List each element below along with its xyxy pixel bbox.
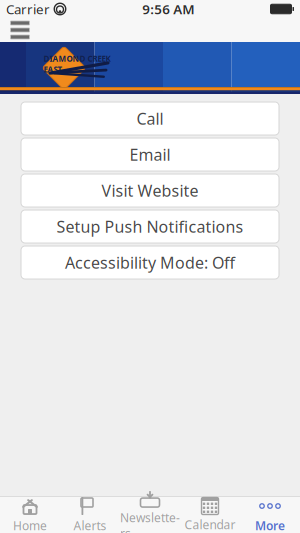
button[interactable]: Menu: [3, 18, 37, 42]
staticText: More: [255, 517, 285, 533]
button[interactable]: Visit Website: [21, 174, 279, 207]
staticText: DIAMOND CREEK EAST: [43, 53, 110, 75]
button[interactable]: Alerts: [60, 497, 120, 533]
button[interactable]: Setup Push Notifications: [21, 210, 279, 243]
button[interactable]: Email: [21, 138, 279, 171]
staticText: Visit Website: [101, 180, 198, 201]
button[interactable]: More: [240, 497, 300, 533]
staticText: Accessibility Mode: Off: [65, 252, 235, 273]
staticText: Alerts: [73, 517, 106, 533]
staticText: Email: [129, 144, 170, 165]
staticText: Carrier: [6, 0, 50, 18]
staticText: Setup Push Notifications: [56, 216, 243, 237]
button[interactable]: Call: [21, 102, 279, 135]
staticText: 9:56 AM: [142, 0, 194, 18]
staticText: Call: [136, 108, 163, 129]
staticText: Calendar: [184, 516, 235, 532]
button[interactable]: Accessibility Mode: Off: [21, 246, 279, 279]
staticText: Home: [13, 517, 47, 533]
button[interactable]: Home: [0, 497, 60, 533]
button[interactable]: Calendar: [180, 497, 240, 533]
button[interactable]: Newsletters: [120, 497, 180, 533]
staticText: Newsletters: [120, 510, 180, 533]
